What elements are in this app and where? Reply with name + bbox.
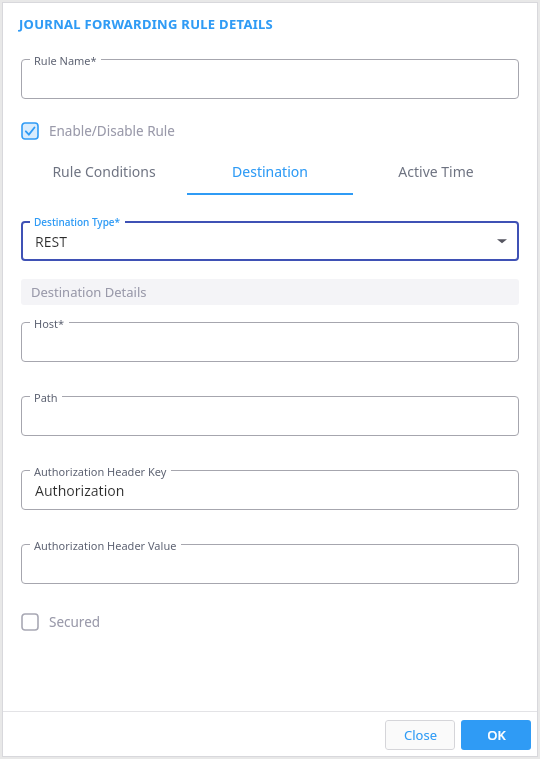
button[interactable]: Close (385, 720, 455, 750)
staticText: Close (404, 726, 437, 744)
button[interactable]: Secured (21, 613, 101, 631)
staticText: Destination Type* (34, 215, 121, 229)
staticText: Enable/Disable Rule (49, 122, 175, 140)
button[interactable]: REST (21, 221, 519, 261)
button[interactable]: Authorization (21, 470, 519, 510)
staticText: REST (35, 232, 67, 251)
staticText: Active Time (398, 162, 474, 181)
button[interactable]: Path (21, 396, 519, 436)
staticText: Host* (34, 316, 65, 331)
staticText: Path (34, 390, 58, 405)
staticText: Destination Details (31, 283, 147, 301)
staticText: Authorization Header Key (34, 464, 167, 479)
staticText: Authorization (35, 481, 125, 500)
button[interactable]: Rule Name* (21, 59, 519, 99)
staticText: Destination (232, 162, 308, 181)
staticText: JOURNAL FORWARDING RULE DETAILS (19, 15, 274, 33)
staticText: Rule Conditions (52, 162, 156, 181)
button[interactable]: Authorization Header Value (21, 544, 519, 584)
staticText: Rule Name* (34, 53, 97, 68)
button[interactable]: OK (461, 720, 531, 750)
button[interactable]: Rule Conditions (21, 157, 187, 195)
button[interactable]: Active Time (353, 157, 519, 195)
button[interactable]: Destination (187, 157, 353, 195)
button[interactable]: Host* (21, 322, 519, 362)
staticText: Authorization Header Value (34, 538, 177, 553)
button[interactable]: Enable/Disable Rule (21, 122, 175, 140)
staticText: Secured (49, 613, 101, 631)
staticText: OK (487, 726, 506, 744)
